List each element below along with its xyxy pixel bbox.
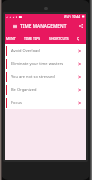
button[interactable]: MENT	[2, 33, 20, 44]
staticText: Focus	[11, 100, 22, 105]
button[interactable]: Open navigation menu	[10, 19, 19, 33]
staticText: MENT	[6, 36, 16, 41]
staticText: Avoid Overload	[11, 48, 40, 53]
staticText: TIME MANAGEMENT	[20, 23, 67, 29]
staticText: SHORTCUTS	[49, 36, 69, 41]
button[interactable]: TIME TIPS	[20, 33, 45, 44]
button[interactable]: Be Organized	[5, 83, 86, 96]
button[interactable]: You are not so stressed	[5, 70, 86, 83]
button[interactable]: SHORTCUTS	[45, 33, 73, 44]
button[interactable]: Focus	[5, 96, 86, 109]
button[interactable]: Avoid Overload	[5, 44, 86, 57]
staticText: Be Organized	[11, 87, 37, 92]
button[interactable]: QUIZ APPS	[73, 33, 83, 44]
staticText: QUIZ APPS	[77, 36, 79, 41]
staticText: Eliminate your time wasters	[11, 61, 64, 66]
staticText: You are not so stressed	[11, 74, 55, 79]
button[interactable]: Eliminate your time wasters	[5, 57, 86, 70]
staticText: 10:44	[72, 15, 81, 19]
staticText: TIME TIPS	[24, 36, 41, 41]
button[interactable]: Share	[75, 19, 86, 33]
staticText: Wi-Fi	[64, 15, 71, 19]
